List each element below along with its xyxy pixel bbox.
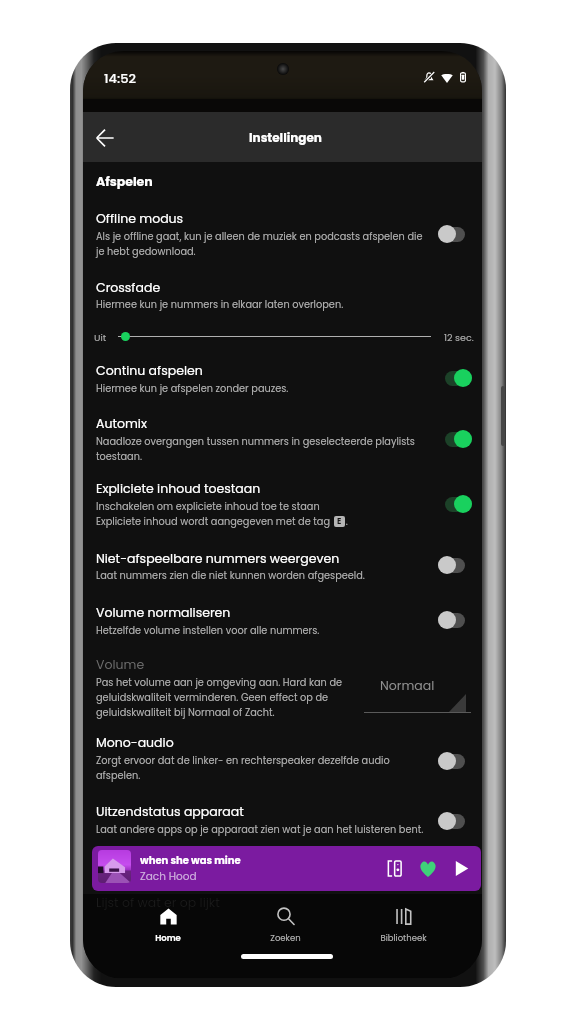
button[interactable] [445, 430, 472, 448]
staticText: Lijst of wat er op lijkt [96, 894, 220, 911]
button[interactable] [438, 556, 465, 574]
staticText: Hetzelfde volume instellen voor alle num… [96, 624, 320, 638]
staticText: Zoeken [270, 932, 301, 944]
staticText: Volume [96, 656, 145, 673]
staticText: Pas het volume aan je omgeving aan. Hard… [96, 676, 343, 719]
button[interactable] [83, 321, 482, 351]
staticText: Mono-audio [96, 734, 174, 751]
staticText: Afspelen [96, 173, 153, 190]
button[interactable] [438, 225, 465, 243]
button[interactable]: Bibliotheek [365, 907, 441, 944]
button[interactable] [83, 604, 482, 656]
staticText: Laat andere apps op je apparaat zien wat… [96, 823, 424, 837]
staticText: Inschakelen om expliciete inhoud toe te … [96, 500, 348, 528]
button[interactable]: Zoeken [247, 907, 323, 944]
staticText: Crossfade [96, 279, 161, 296]
staticText: Hiermee kun je nummers in elkaar laten o… [96, 298, 344, 312]
staticText: Instellingen [249, 129, 322, 146]
button[interactable]: Vind ik leuk [416, 857, 439, 880]
staticText: Uit [94, 331, 107, 344]
staticText: Home [155, 932, 181, 944]
staticText: when she was mine [140, 853, 241, 867]
button[interactable] [83, 480, 482, 532]
staticText: Laat nummers zien die niet kunnen worden… [96, 569, 365, 583]
button[interactable] [83, 210, 482, 262]
staticText: Zach Hood [140, 869, 197, 884]
button[interactable] [83, 550, 482, 601]
button[interactable] [83, 362, 482, 414]
button[interactable] [438, 812, 465, 830]
button[interactable]: Normaal [364, 674, 471, 714]
button[interactable]: when she was mine [92, 846, 481, 891]
button[interactable] [445, 495, 472, 513]
staticText: Hiermee kun je afspelen zonder pauzes. [96, 382, 289, 396]
staticText: Als je offline gaat, kun je alleen de mu… [96, 230, 423, 258]
staticText: Automix [96, 415, 147, 432]
staticText: 12 sec. [444, 331, 474, 344]
button[interactable] [83, 415, 482, 467]
staticText: Zorgt ervoor dat de linker- en rechtersp… [96, 754, 390, 782]
staticText: Naadloze overgangen tussen nummers in ge… [96, 435, 415, 463]
button[interactable] [83, 734, 482, 786]
button[interactable] [83, 656, 482, 722]
button[interactable] [438, 611, 465, 629]
button[interactable]: Afspelen [450, 857, 473, 880]
staticText: Niet-afspeelbare nummers weergeven [96, 550, 340, 567]
staticText: Volume normaliseren [96, 604, 231, 621]
button[interactable]: Verbinden met een apparaat [384, 857, 407, 880]
staticText: Continu afspelen [96, 362, 203, 379]
button[interactable] [438, 752, 465, 770]
button[interactable] [83, 803, 482, 855]
button[interactable] [445, 369, 472, 387]
staticText: Offline modus [96, 210, 184, 227]
staticText: Expliciete inhoud toestaan [96, 480, 261, 497]
button[interactable]: Home [130, 907, 206, 944]
button[interactable]: Terug [84, 117, 126, 159]
staticText: E [337, 516, 342, 527]
staticText: Bibliotheek [380, 932, 427, 944]
staticText: Normaal [380, 677, 435, 694]
staticText: Uitzendstatus apparaat [96, 803, 244, 820]
staticText: 14:52 [104, 69, 136, 87]
button[interactable] [83, 279, 482, 330]
